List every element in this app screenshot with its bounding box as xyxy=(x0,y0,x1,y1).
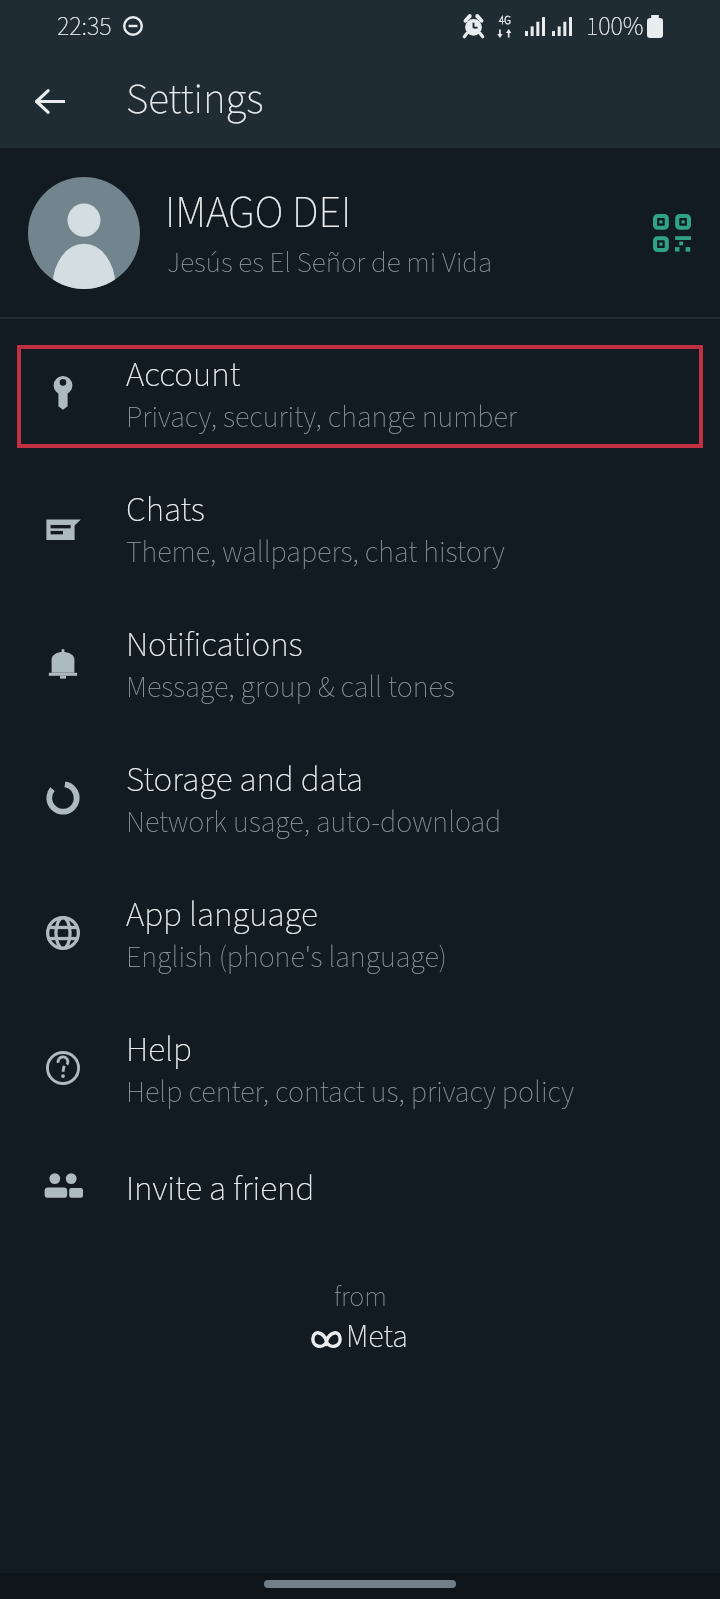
staticText: App language xyxy=(126,890,318,940)
staticText: 22:35 xyxy=(57,8,112,45)
staticText: Theme, wallpapers, chat history xyxy=(126,531,505,574)
staticText: 4G xyxy=(499,13,511,29)
staticText: Privacy, security, change number xyxy=(126,396,518,439)
staticText: Meta xyxy=(346,1314,408,1360)
staticText: Message, group & call tones xyxy=(126,666,455,709)
button[interactable]: Account xyxy=(0,329,720,464)
staticText: from xyxy=(334,1277,387,1317)
button[interactable]: Back xyxy=(10,64,88,142)
staticText: Help xyxy=(126,1025,192,1075)
button[interactable]: Chats xyxy=(0,464,720,599)
staticText: Invite a friend xyxy=(126,1164,315,1214)
staticText: Help center, contact us, privacy policy xyxy=(126,1071,574,1114)
staticText: IMAGO DEI xyxy=(165,182,352,245)
staticText: English (phone's language) xyxy=(126,936,447,979)
staticText: Notifications xyxy=(126,620,303,670)
staticText: Network usage, auto-download xyxy=(126,801,502,844)
staticText: Settings xyxy=(126,69,264,130)
button[interactable]: App language xyxy=(0,869,720,1004)
staticText: Storage and data xyxy=(126,755,364,805)
button[interactable]: QR code xyxy=(640,201,704,265)
button[interactable]: IMAGO DEI xyxy=(0,148,720,317)
staticText: Chats xyxy=(126,485,205,535)
staticText: Jesús es El Señor de mi Vida xyxy=(167,242,493,283)
button[interactable]: Notifications xyxy=(0,599,720,734)
button[interactable]: Invite a friend xyxy=(0,1139,720,1274)
staticText: 100% xyxy=(586,8,644,45)
button[interactable]: Storage and data xyxy=(0,734,720,869)
staticText: Account xyxy=(126,350,241,400)
button[interactable]: Help xyxy=(0,1004,720,1139)
